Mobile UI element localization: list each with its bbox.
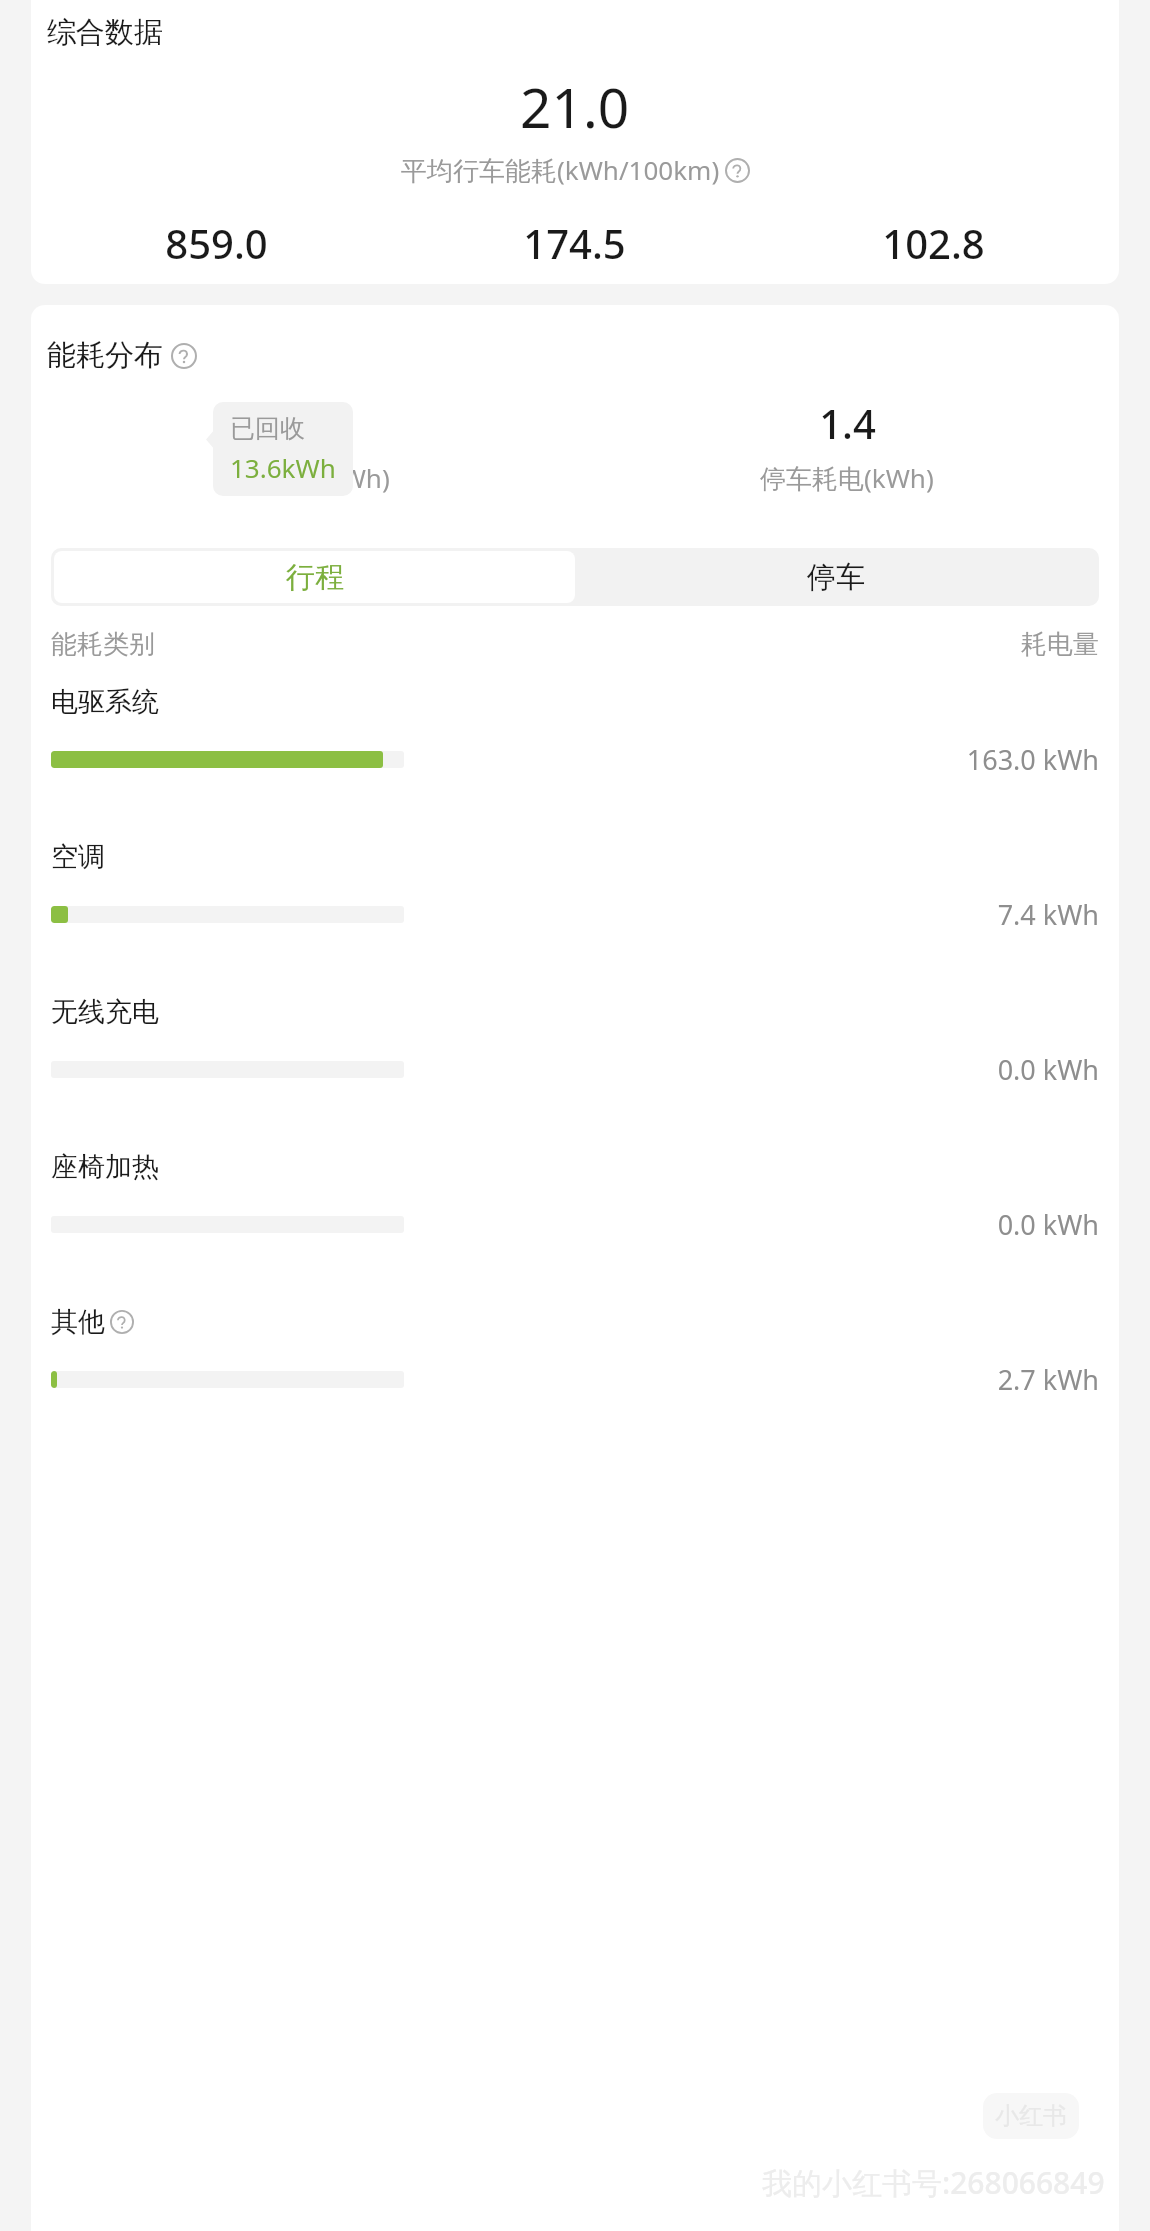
staticText: 0.0 kWh bbox=[997, 1206, 1099, 1243]
staticText: 座椅加热 bbox=[51, 1150, 159, 1184]
staticText: 耗电量 bbox=[1021, 628, 1099, 661]
staticText: 小红书 bbox=[995, 2101, 1067, 2131]
staticText: 我的小红书号:268066849 bbox=[762, 2162, 1105, 2203]
staticText: 163.0 kWh bbox=[966, 741, 1099, 778]
staticText: 13.6kWh bbox=[230, 450, 336, 485]
staticText: 综合数据 bbox=[47, 14, 163, 51]
staticText: 0.0 kWh bbox=[997, 1051, 1099, 1088]
staticText: 行程耗电(kWh) bbox=[216, 460, 390, 496]
staticText: 173.1 bbox=[252, 396, 355, 450]
staticText: 1.4 bbox=[819, 396, 876, 450]
staticText: 2.7 kWh bbox=[997, 1361, 1099, 1398]
staticText: 平均行车能耗(kWh/100km) bbox=[401, 152, 720, 188]
staticText: 已回收 bbox=[230, 413, 305, 444]
staticText: 能耗分布 bbox=[47, 337, 163, 374]
staticText: 空调 bbox=[51, 840, 105, 874]
staticText: 行程 bbox=[286, 559, 344, 596]
staticText: 859.0 bbox=[165, 216, 268, 270]
button[interactable]: 行程 bbox=[54, 551, 575, 603]
staticText: 7.4 kWh bbox=[997, 896, 1099, 933]
staticText: 电驱系统 bbox=[51, 685, 159, 719]
staticText: 174.5 bbox=[523, 216, 626, 270]
staticText: 21.0 bbox=[520, 69, 630, 144]
staticText: 停车 bbox=[807, 559, 865, 596]
button[interactable]: 停车 bbox=[575, 551, 1096, 603]
staticText: 102.8 bbox=[882, 216, 985, 270]
staticText: 能耗类别 bbox=[51, 628, 155, 661]
staticText: 其他 bbox=[51, 1305, 105, 1339]
staticText: 无线充电 bbox=[51, 995, 159, 1029]
staticText: 停车耗电(kWh) bbox=[760, 460, 934, 496]
